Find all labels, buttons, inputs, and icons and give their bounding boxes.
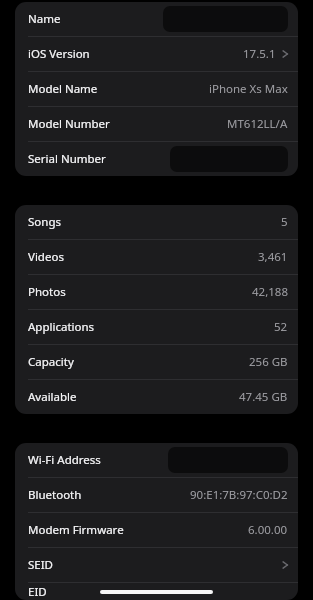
staticText: Applications [28, 319, 95, 335]
button[interactable]: Model Name [15, 72, 298, 106]
button[interactable]: SEID [15, 548, 298, 582]
staticText: Capacity [28, 354, 74, 370]
staticText: Serial Number [28, 151, 106, 167]
button[interactable]: Applications [15, 310, 298, 344]
button[interactable]: Modem Firmware [15, 513, 298, 547]
staticText: Available [28, 389, 77, 405]
staticText: MT612LL/A [227, 116, 288, 132]
staticText: Videos [28, 249, 64, 265]
button[interactable]: Videos [15, 240, 298, 274]
staticText: Name [28, 11, 61, 27]
staticText: Modem Firmware [28, 522, 124, 538]
staticText: Wi-Fi Address [28, 452, 101, 468]
staticText: Model Number [28, 116, 110, 132]
staticText: Songs [28, 214, 61, 230]
button[interactable]: Model Number [15, 107, 298, 141]
staticText: Model Name [28, 81, 98, 97]
button[interactable]: Available [15, 380, 298, 414]
button[interactable]: Serial Number [15, 142, 298, 176]
staticText: 52 [274, 319, 288, 335]
staticText: 5 [281, 214, 288, 230]
staticText: EID [28, 584, 47, 600]
button[interactable]: Name [15, 2, 298, 36]
button[interactable]: Songs [15, 205, 298, 239]
staticText: 256 GB [249, 354, 288, 370]
staticText: 47.45 GB [239, 389, 288, 405]
staticText: 17.5.1 [243, 46, 276, 62]
button[interactable]: Wi-Fi Address [15, 443, 298, 477]
staticText: 3,461 [258, 249, 288, 265]
button[interactable]: Capacity [15, 345, 298, 379]
button[interactable]: iOS Version [15, 37, 298, 71]
staticText: 6.00.00 [248, 522, 288, 538]
staticText: SEID [28, 557, 54, 573]
button[interactable]: Bluetooth [15, 478, 298, 512]
staticText: Photos [28, 284, 66, 300]
button[interactable]: EID [15, 583, 298, 600]
button[interactable]: Photos [15, 275, 298, 309]
staticText: Bluetooth [28, 487, 82, 503]
staticText: iPhone Xs Max [209, 81, 288, 97]
other: Home indicator [100, 590, 213, 594]
staticText: 42,188 [252, 284, 288, 300]
staticText: 90:E1:7B:97:C0:D2 [190, 487, 288, 503]
staticText: iOS Version [28, 46, 90, 62]
